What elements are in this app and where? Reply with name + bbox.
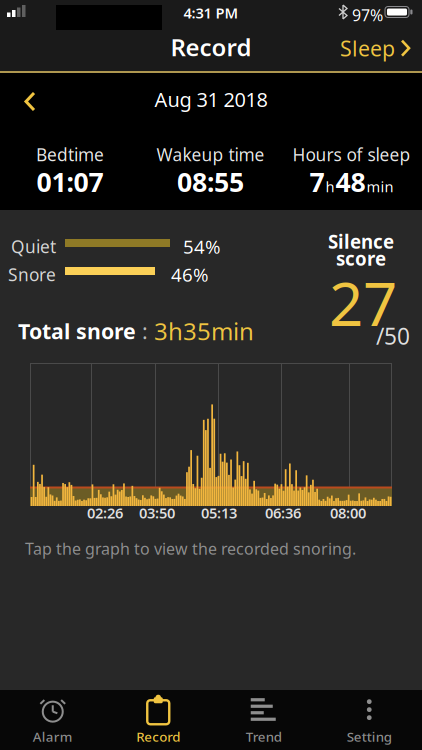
staticText: Snore [8,263,56,286]
button[interactable]: Trend [211,690,316,750]
staticText: Silence [328,229,394,254]
staticText: 02:26 [87,503,123,522]
staticText: 48 [335,164,365,199]
staticText: Trend [246,728,282,745]
button[interactable]: Previous day [25,92,37,111]
staticText: score [336,246,386,271]
staticText: 3h35min [154,315,254,347]
staticText: 54% [183,234,221,259]
staticText: /50 [376,321,410,351]
staticText: Hours of sleep [292,143,410,166]
staticText: 03:50 [139,503,175,522]
button[interactable]: Setting [316,690,422,750]
staticText: Alarm [33,728,73,745]
staticText: 08:00 [330,503,366,522]
staticText: 46% [171,262,209,287]
staticText: Bedtime [36,143,104,166]
staticText: h [325,177,334,196]
button[interactable]: Alarm [0,690,105,750]
staticText: 27 [329,263,397,343]
staticText: 7 [309,164,324,199]
staticText: Record [170,31,251,63]
staticText: 08:55 [177,164,244,199]
staticText: : [136,317,154,345]
staticText: 97% [352,4,383,26]
staticText: 05:13 [201,503,237,522]
button[interactable]: Sleep [340,34,411,62]
staticText: 01:07 [36,164,103,199]
staticText: Total snore [18,317,136,345]
staticText: min [366,177,393,196]
staticText: 06:36 [265,503,301,522]
staticText: Sleep [340,34,395,62]
staticText: Tap the graph to view the recorded snori… [25,538,356,559]
staticText: Quiet [11,235,56,258]
button[interactable]: View the recorded snoring [30,363,392,506]
staticText: Record [136,728,180,745]
staticText: Aug 31 2018 [154,86,267,113]
staticText: 4:31 PM [183,3,238,22]
staticText: Setting [347,728,392,745]
button[interactable]: Record [105,690,211,750]
staticText: Wakeup time [156,143,264,166]
